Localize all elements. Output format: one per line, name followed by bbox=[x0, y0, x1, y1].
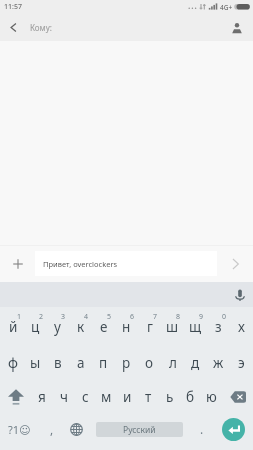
staticText: . bbox=[200, 421, 204, 437]
button[interactable]: , bbox=[39, 411, 64, 447]
button[interactable]: и bbox=[117, 379, 138, 415]
staticText: в bbox=[54, 354, 62, 372]
staticText: 9 bbox=[199, 312, 204, 322]
staticText: Привет, overclockers bbox=[43, 259, 118, 269]
staticText: с bbox=[82, 388, 89, 406]
button[interactable]: Add attachment bbox=[0, 246, 35, 282]
staticText: м bbox=[101, 388, 112, 406]
button[interactable]: 2 bbox=[24, 309, 46, 345]
staticText: 2 bbox=[39, 312, 44, 322]
button[interactable]: р bbox=[115, 345, 138, 381]
staticText: ы bbox=[30, 354, 41, 372]
staticText: х bbox=[238, 318, 245, 336]
button[interactable]: ф bbox=[2, 345, 24, 381]
staticText: ц bbox=[31, 318, 40, 336]
button[interactable]: Русский bbox=[88, 411, 190, 447]
button[interactable]: Backspace bbox=[222, 379, 253, 415]
staticText: ж bbox=[213, 354, 224, 372]
staticText: к bbox=[77, 318, 85, 336]
staticText: р bbox=[122, 354, 131, 372]
button[interactable]: б bbox=[180, 379, 201, 415]
button[interactable]: 5 bbox=[92, 309, 115, 345]
button[interactable]: д bbox=[184, 345, 207, 381]
staticText: э bbox=[238, 354, 245, 372]
button[interactable]: Привет, overclockers bbox=[35, 251, 217, 276]
button[interactable]: а bbox=[69, 345, 92, 381]
button[interactable]: ю bbox=[201, 379, 222, 415]
staticText: б bbox=[186, 388, 195, 406]
staticText: п bbox=[99, 354, 108, 372]
button[interactable]: Contacts bbox=[221, 14, 253, 41]
staticText: 8 bbox=[176, 312, 181, 322]
staticText: щ bbox=[189, 318, 202, 336]
button[interactable]: ы bbox=[24, 345, 46, 381]
button[interactable]: в bbox=[46, 345, 69, 381]
staticText: 6 bbox=[130, 312, 135, 322]
staticText: 7 bbox=[153, 312, 158, 322]
button[interactable]: с bbox=[75, 379, 96, 415]
button[interactable]: Switch language bbox=[64, 411, 88, 447]
staticText: д bbox=[191, 354, 200, 372]
staticText: , bbox=[50, 421, 54, 437]
staticText: 5 bbox=[107, 312, 112, 322]
button[interactable]: 0 bbox=[207, 309, 230, 345]
staticText: у bbox=[54, 318, 61, 336]
button[interactable]: ч bbox=[53, 379, 75, 415]
staticText: я bbox=[38, 388, 46, 406]
button[interactable]: о bbox=[138, 345, 161, 381]
button[interactable]: Enter bbox=[213, 411, 253, 447]
staticText: 0 bbox=[222, 312, 227, 322]
button[interactable]: 9 bbox=[184, 309, 207, 345]
staticText: и bbox=[123, 388, 132, 406]
button[interactable]: т bbox=[138, 379, 159, 415]
button[interactable]: л bbox=[161, 345, 184, 381]
button[interactable]: ?1☺ bbox=[0, 411, 39, 447]
button[interactable]: 4 bbox=[69, 309, 92, 345]
button[interactable]: ь bbox=[159, 379, 180, 415]
button[interactable]: м bbox=[96, 379, 117, 415]
staticText: ф bbox=[8, 354, 18, 372]
button[interactable]: 8 bbox=[161, 309, 184, 345]
staticText: з bbox=[215, 318, 222, 336]
staticText: л bbox=[169, 354, 177, 372]
staticText: 1 bbox=[17, 312, 22, 322]
staticText: ь bbox=[166, 388, 174, 406]
staticText: ю bbox=[206, 388, 217, 406]
button[interactable]: э bbox=[230, 345, 253, 381]
button[interactable]: 7 bbox=[138, 309, 161, 345]
staticText: г bbox=[147, 318, 153, 336]
staticText: т bbox=[145, 388, 152, 406]
button[interactable]: Voice input bbox=[226, 282, 253, 307]
button[interactable]: Back bbox=[0, 14, 26, 41]
button[interactable]: п bbox=[92, 345, 115, 381]
staticText: о bbox=[145, 354, 154, 372]
button[interactable]: . bbox=[190, 411, 213, 447]
staticText: ч bbox=[60, 388, 68, 406]
staticText: ?1☺ bbox=[8, 422, 31, 437]
staticText: 11:57 bbox=[4, 2, 22, 12]
staticText: е bbox=[100, 318, 108, 336]
button[interactable]: 1 bbox=[2, 309, 24, 345]
button[interactable]: Shift bbox=[0, 379, 31, 415]
staticText: н bbox=[122, 318, 131, 336]
staticText: Русский bbox=[123, 424, 156, 436]
staticText: й bbox=[9, 318, 18, 336]
staticText: 3 bbox=[61, 312, 66, 322]
button[interactable]: х bbox=[230, 309, 253, 345]
button[interactable]: 6 bbox=[115, 309, 138, 345]
staticText: Кому: bbox=[30, 22, 52, 33]
staticText: а bbox=[77, 354, 85, 372]
staticText: 4 bbox=[84, 312, 89, 322]
button[interactable]: ж bbox=[207, 345, 230, 381]
staticText: 4G+ bbox=[220, 3, 233, 12]
button[interactable]: Send bbox=[217, 246, 253, 282]
button[interactable]: я bbox=[31, 379, 53, 415]
button[interactable]: 3 bbox=[46, 309, 69, 345]
staticText: ш bbox=[166, 318, 179, 336]
